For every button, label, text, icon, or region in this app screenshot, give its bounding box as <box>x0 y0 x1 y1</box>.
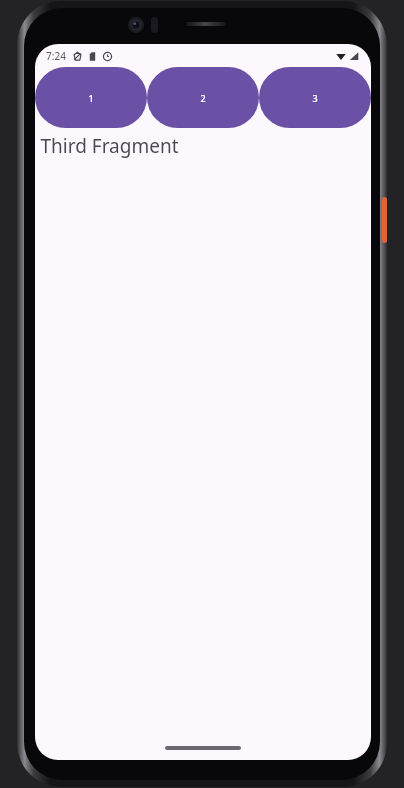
other: Home gesture handle <box>165 746 241 750</box>
button[interactable]: 3 <box>259 67 371 128</box>
staticText: 1 <box>88 92 94 104</box>
staticText: 2 <box>200 92 206 104</box>
button[interactable]: 2 <box>147 67 259 128</box>
staticText: 7:24 <box>46 49 66 63</box>
button[interactable]: 1 <box>35 67 147 128</box>
staticText: Third Fragment <box>40 133 179 159</box>
staticText: 3 <box>312 92 318 104</box>
